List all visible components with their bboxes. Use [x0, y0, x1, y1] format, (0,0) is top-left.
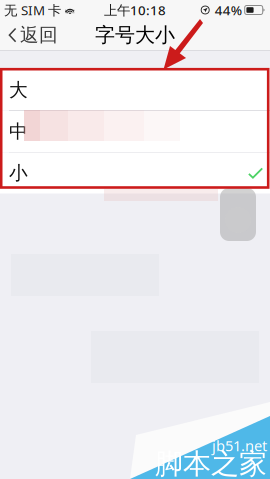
staticText: 44% — [215, 1, 242, 19]
button[interactable]: 小 — [0, 152, 270, 193]
staticText: 小 — [9, 161, 28, 184]
staticText: 无 SIM 卡 — [4, 1, 61, 19]
staticText: 返回 — [20, 23, 58, 46]
staticText: jb51.net — [212, 436, 267, 455]
button[interactable]: 返回 — [0, 20, 66, 50]
button[interactable]: 中 — [0, 111, 270, 152]
staticText: 上午10:18 — [104, 1, 166, 19]
staticText: 大 — [9, 78, 28, 101]
staticText: 中 — [9, 120, 28, 143]
staticText: 字号大小 — [95, 23, 175, 47]
button[interactable]: 大 — [0, 69, 270, 110]
staticText: 脚本之家 — [155, 447, 267, 479]
